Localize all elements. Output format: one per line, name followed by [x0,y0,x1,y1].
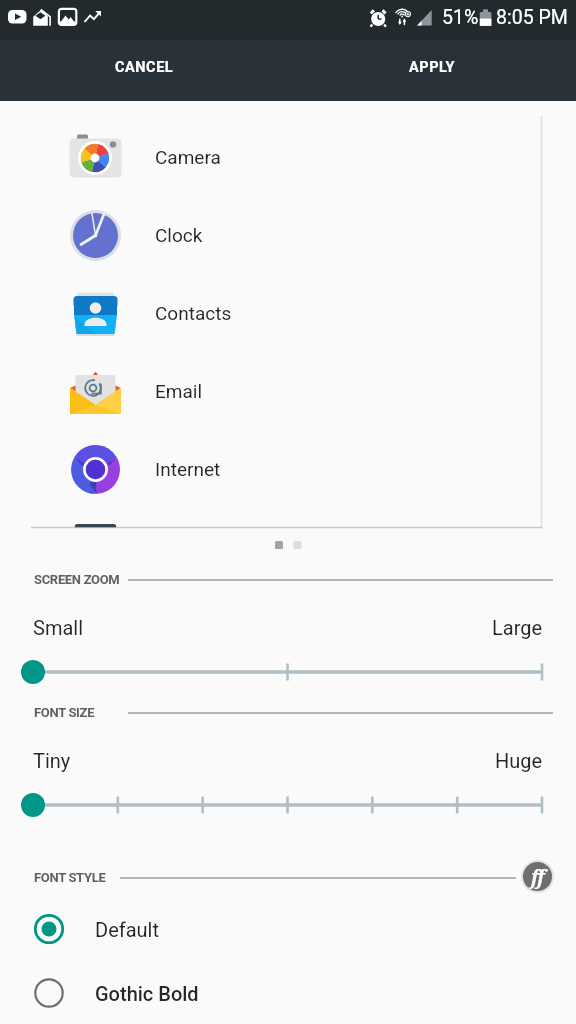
button[interactable] [0,790,576,820]
button[interactable]: Contacts [0,274,576,352]
button[interactable]: Clock [0,196,576,274]
button[interactable]: Camera [0,118,576,196]
staticText: Large [492,616,543,639]
staticText: Huge [495,749,543,772]
staticText: Clock [155,224,203,246]
staticText: Camera [155,146,221,168]
staticText: 51% [442,6,479,29]
staticText: Tiny [33,749,71,772]
staticText: CANCEL [115,59,174,76]
staticText: FONT SIZE [34,705,95,720]
staticText: Gothic Bold [95,982,199,1005]
button[interactable]: Gothic Bold [0,968,576,1018]
staticText: APPLY [409,59,456,76]
staticText: Internet [155,458,221,480]
staticText: Contacts [155,302,232,324]
staticText: 8:05 PM [496,6,568,29]
button[interactable]: APPLY [288,40,576,101]
button[interactable]: Font style preview [523,862,552,891]
staticText: ff [531,864,545,890]
staticText: Default [95,918,159,941]
button[interactable]: Default [0,904,576,954]
button[interactable]: Internet [0,430,576,508]
staticText: FONT STYLE [34,870,106,885]
button[interactable]: Email [0,352,576,430]
staticText: SCREEN ZOOM [34,572,120,587]
staticText: Small [33,616,84,639]
button[interactable] [0,657,576,687]
staticText: Email [155,380,203,402]
button[interactable]: CANCEL [0,40,288,101]
